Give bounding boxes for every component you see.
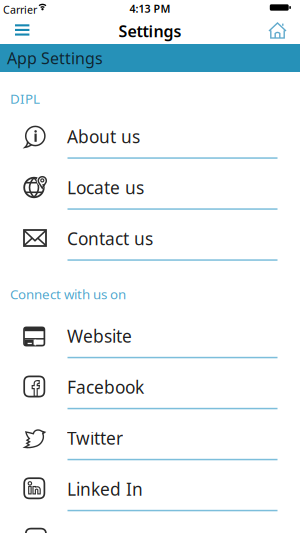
button[interactable]: Linked In bbox=[0, 467, 300, 511]
staticText: 4:13 PM bbox=[129, 1, 170, 16]
button[interactable]: About us bbox=[0, 114, 300, 158]
staticText: Connect with us on bbox=[10, 285, 126, 303]
button[interactable] bbox=[266, 19, 290, 43]
staticText: App Settings bbox=[7, 47, 103, 69]
staticText: Settings bbox=[118, 20, 181, 42]
staticText: Contact us bbox=[67, 227, 153, 250]
staticText: Locate us bbox=[67, 176, 144, 199]
staticText: Twitter bbox=[67, 426, 123, 449]
button[interactable]: Contact us bbox=[0, 216, 300, 260]
staticText: About us bbox=[67, 125, 140, 148]
button[interactable]: Locate us bbox=[0, 165, 300, 209]
staticText: Carrier bbox=[3, 2, 37, 17]
staticText: Linked In bbox=[67, 477, 143, 500]
button[interactable] bbox=[8, 18, 48, 42]
staticText: DIPL bbox=[10, 90, 40, 107]
button[interactable]: Facebook bbox=[0, 365, 300, 409]
staticText: Facebook bbox=[67, 375, 144, 398]
staticText: Website bbox=[67, 324, 132, 347]
button[interactable]: Website bbox=[0, 314, 300, 358]
button[interactable]: Twitter bbox=[0, 416, 300, 460]
